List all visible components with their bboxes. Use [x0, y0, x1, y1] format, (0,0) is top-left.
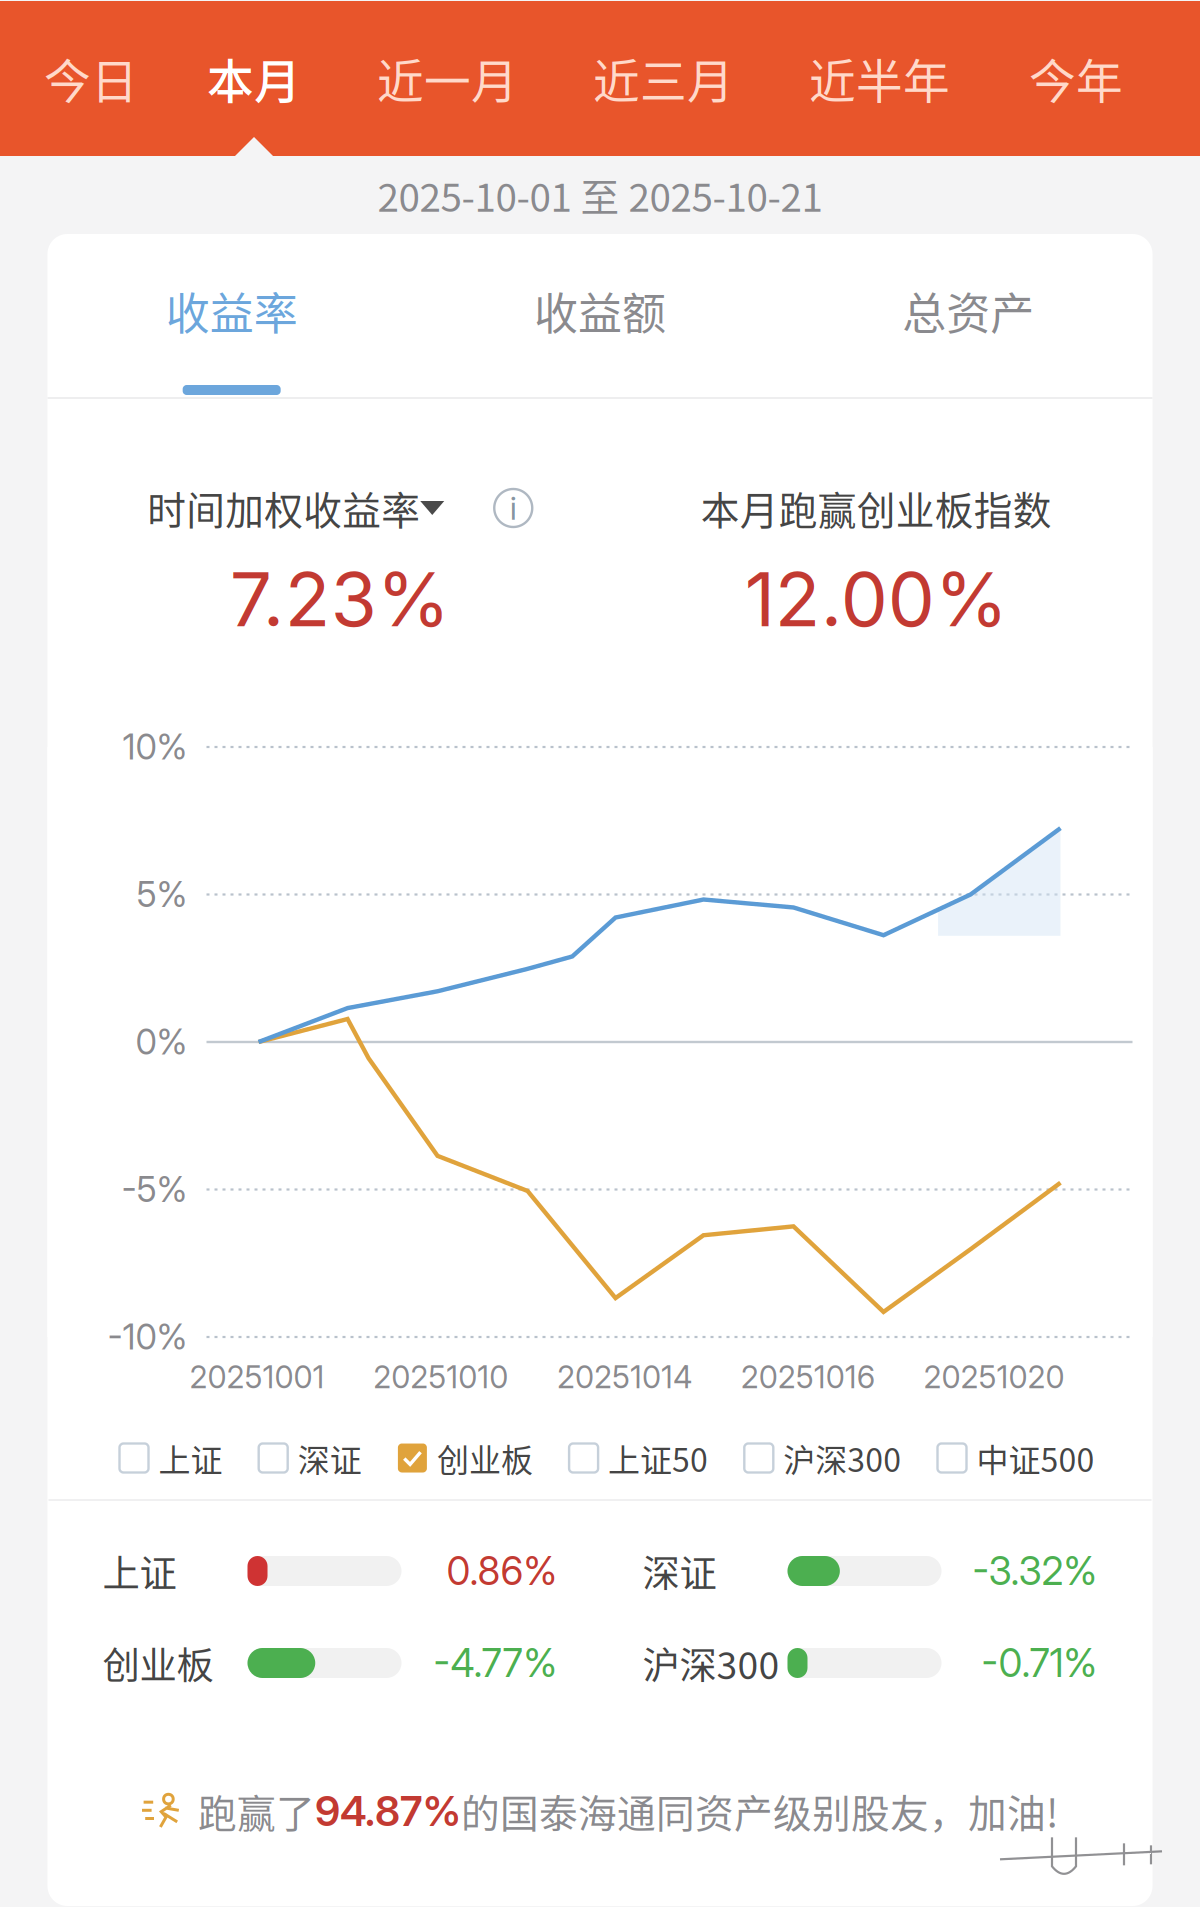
staticText: 上证 [158, 1435, 222, 1481]
staticText: 深证 [298, 1435, 362, 1481]
staticText: 20251001 [189, 1358, 324, 1395]
staticText: 收益额 [534, 279, 666, 343]
staticText: 本月跑赢创业板指数 [701, 480, 1052, 536]
button[interactable]: 沪深300 [744, 1435, 901, 1481]
button[interactable]: 今日 [44, 1, 138, 156]
button[interactable]: 收益额 [416, 234, 784, 397]
staticText: 0.86% [446, 1548, 557, 1594]
button[interactable]: 上证50 [569, 1435, 708, 1481]
staticText: -0.71% [981, 1640, 1097, 1686]
staticText: 20251020 [923, 1358, 1064, 1395]
staticText: 沪深300 [642, 1636, 779, 1690]
staticText: 20251014 [557, 1358, 692, 1395]
staticText: 94.87% [315, 1786, 461, 1836]
staticText: 总资产 [902, 279, 1034, 343]
staticText: 上证50 [608, 1435, 708, 1481]
staticText: 5% [136, 873, 187, 915]
staticText: 的国泰海通同资产级别股友，加油! [461, 1783, 1058, 1839]
staticText: 20251016 [741, 1358, 875, 1395]
staticText: 10% [122, 726, 187, 768]
button[interactable]: 总资产 [784, 234, 1152, 397]
staticText: i [510, 489, 517, 527]
staticText: 7.23% [230, 554, 450, 644]
button[interactable]: 创业板 [398, 1435, 533, 1481]
staticText: 12.00% [745, 554, 1008, 644]
staticText: 跑赢了 [198, 1783, 315, 1839]
staticText: -3.32% [972, 1548, 1097, 1594]
button[interactable]: 收益率 [47, 234, 416, 397]
staticText: 上证 [102, 1544, 176, 1598]
staticText: 收益率 [166, 279, 298, 343]
staticText: -4.77% [433, 1640, 557, 1686]
staticText: 今年 [1029, 44, 1123, 112]
staticText: 近三月 [593, 44, 734, 112]
staticText: 0% [135, 1021, 187, 1063]
staticText: 今日 [44, 44, 138, 112]
staticText: -5% [121, 1168, 187, 1210]
staticText: -10% [107, 1316, 187, 1358]
staticText: 时间加权收益率 [147, 480, 420, 536]
staticText: 创业板 [102, 1636, 213, 1690]
staticText: 深证 [642, 1544, 716, 1598]
button[interactable]: 近一月 [377, 1, 518, 156]
button[interactable]: 中证500 [937, 1435, 1094, 1481]
staticText: 2025-10-01 至 2025-10-21 [377, 167, 822, 223]
button[interactable]: 本月 [207, 1, 301, 156]
button[interactable]: 上证 [119, 1435, 222, 1481]
staticText: 创业板 [437, 1435, 533, 1481]
staticText: 本月 [207, 44, 301, 112]
staticText: 沪深300 [783, 1435, 901, 1481]
button[interactable]: 深证 [259, 1435, 362, 1481]
button[interactable]: 今年 [1029, 1, 1123, 156]
button[interactable]: 近半年 [809, 1, 950, 156]
button[interactable]: 近三月 [593, 1, 734, 156]
staticText: 近半年 [809, 44, 950, 112]
staticText: 近一月 [377, 44, 518, 112]
staticText: 20251010 [373, 1358, 508, 1395]
staticText: 中证500 [976, 1435, 1094, 1481]
